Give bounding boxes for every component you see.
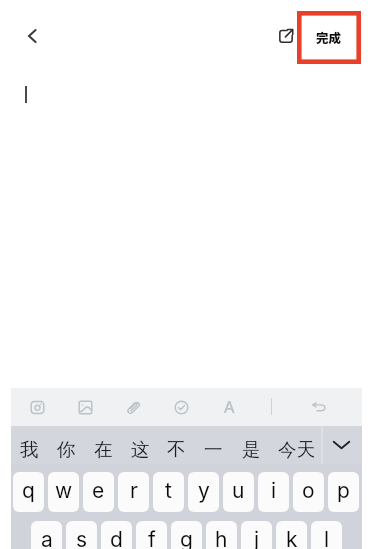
staticText: w <box>55 478 73 503</box>
button[interactable]: 是 <box>233 426 269 464</box>
button[interactable]: 你 <box>48 426 84 464</box>
staticText: e <box>92 478 105 503</box>
button[interactable]: o <box>293 472 324 512</box>
button[interactable]: s <box>66 521 97 549</box>
button[interactable]: u <box>223 472 254 512</box>
button[interactable]: r <box>118 472 149 512</box>
button[interactable]: t <box>153 472 184 512</box>
button[interactable]: a <box>31 521 62 549</box>
button[interactable]: 在 <box>85 426 121 464</box>
button[interactable]: Photos <box>63 388 107 426</box>
staticText: A <box>224 396 235 418</box>
button[interactable]: More suggestions <box>325 426 357 464</box>
staticText: f <box>148 527 156 549</box>
staticText: 一 <box>204 438 223 461</box>
staticText: p <box>337 478 350 503</box>
staticText: a <box>41 527 53 549</box>
staticText: 我 <box>20 438 39 461</box>
button[interactable]: p <box>328 472 359 512</box>
button[interactable]: 这 <box>122 426 158 464</box>
staticText: y <box>198 478 210 503</box>
staticText: g <box>180 527 193 549</box>
button[interactable]: 我 <box>11 426 47 464</box>
button[interactable]: 今天 <box>274 426 318 464</box>
staticText: l <box>324 527 330 549</box>
button[interactable]: Checklist <box>159 388 203 426</box>
button[interactable]: Undo <box>296 388 340 426</box>
button[interactable]: Camera <box>15 388 59 426</box>
staticText: 完成 <box>316 28 342 46</box>
staticText: h <box>215 527 228 549</box>
staticText: i <box>271 478 277 503</box>
staticText: d <box>110 527 123 549</box>
button[interactable]: Format <box>207 388 251 426</box>
button[interactable]: 不 <box>158 426 194 464</box>
staticText: t <box>165 478 172 503</box>
button[interactable]: h <box>206 521 237 549</box>
button[interactable]: Share <box>268 18 304 54</box>
button[interactable]: l <box>311 521 342 549</box>
staticText: 在 <box>94 438 113 461</box>
button[interactable]: q <box>13 472 44 512</box>
staticText: q <box>22 478 35 503</box>
button[interactable]: e <box>83 472 114 512</box>
staticText: 不 <box>167 438 186 461</box>
button[interactable]: 完成 <box>297 11 361 64</box>
staticText: k <box>286 527 298 549</box>
button[interactable]: g <box>171 521 202 549</box>
button[interactable]: f <box>136 521 167 549</box>
staticText: j <box>254 527 260 549</box>
staticText: s <box>76 527 88 549</box>
staticText: u <box>232 478 245 503</box>
staticText: 今天 <box>278 438 315 461</box>
button[interactable]: y <box>188 472 219 512</box>
staticText: 是 <box>242 438 261 461</box>
button[interactable]: w <box>48 472 79 512</box>
button[interactable]: d <box>101 521 132 549</box>
button[interactable]: 一 <box>195 426 231 464</box>
button[interactable]: i <box>258 472 289 512</box>
button[interactable]: k <box>276 521 307 549</box>
staticText: r <box>130 478 138 503</box>
button[interactable]: Attach <box>111 388 155 426</box>
staticText: 这 <box>131 438 150 461</box>
staticText: 你 <box>57 438 76 461</box>
button[interactable]: Back <box>12 16 52 56</box>
staticText: o <box>302 478 315 503</box>
button[interactable]: j <box>241 521 272 549</box>
